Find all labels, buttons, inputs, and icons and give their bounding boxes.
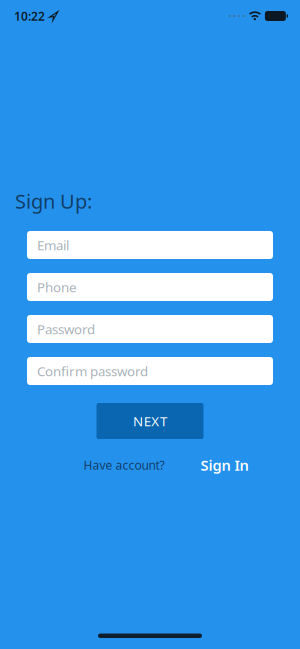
staticText: Phone <box>37 278 77 296</box>
staticText: Confirm password <box>37 362 148 380</box>
staticText: Sign In <box>200 455 248 475</box>
button[interactable]: Phone <box>27 273 273 301</box>
staticText: Have account? <box>83 457 164 473</box>
button[interactable]: Password <box>27 315 273 343</box>
staticText: NEXT <box>133 412 167 430</box>
button[interactable]: Confirm password <box>27 357 273 385</box>
staticText: Sign Up: <box>15 188 92 214</box>
staticText: Email <box>37 236 69 254</box>
staticText: Password <box>37 320 95 338</box>
button[interactable]: Sign In <box>200 455 248 475</box>
button[interactable]: NEXT <box>96 403 203 439</box>
staticText: 10:22 <box>14 8 45 24</box>
button[interactable]: Email <box>27 231 273 259</box>
